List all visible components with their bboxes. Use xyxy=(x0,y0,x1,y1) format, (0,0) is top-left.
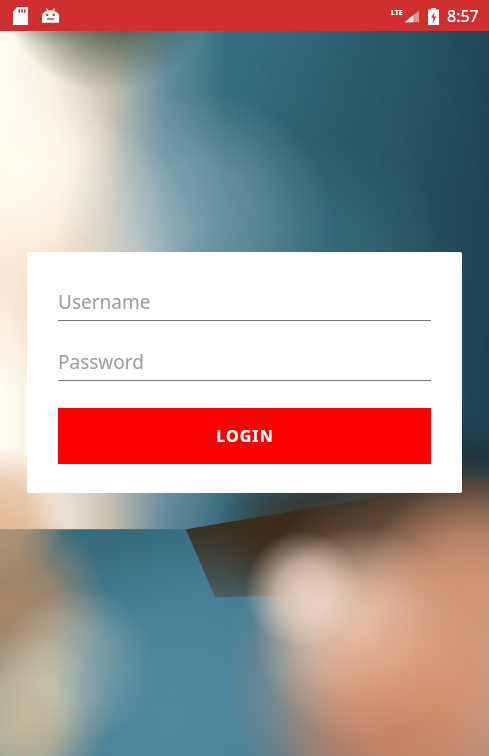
staticText: 8:57 xyxy=(447,5,479,27)
staticText: Username xyxy=(58,289,151,315)
staticText: Password xyxy=(58,349,144,375)
button[interactable]: LOGIN xyxy=(58,408,431,464)
button[interactable]: Password xyxy=(58,349,431,381)
staticText: LTE xyxy=(391,8,403,18)
button[interactable]: Username xyxy=(58,289,431,321)
staticText: LOGIN xyxy=(216,425,274,447)
